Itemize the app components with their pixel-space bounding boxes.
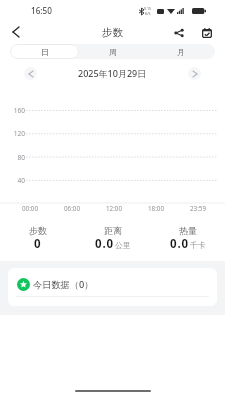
staticText: 步数 xyxy=(102,26,123,39)
staticText: 0 xyxy=(34,236,42,252)
staticText: 0.0 xyxy=(95,236,114,252)
staticText: 热量 xyxy=(179,225,197,236)
button[interactable]: Calendar xyxy=(198,24,215,41)
button[interactable]: Next day xyxy=(188,67,201,80)
staticText: 16:50 xyxy=(31,5,52,16)
button[interactable]: 月 xyxy=(147,44,215,59)
staticText: 2025年10月29日 xyxy=(78,67,147,79)
staticText: 今日数据（0） xyxy=(33,278,94,291)
button[interactable]: Previous day xyxy=(24,67,37,80)
staticText: 80 xyxy=(0,153,25,162)
staticText: 0.15 xyxy=(144,6,152,11)
staticText: 公里 xyxy=(115,240,131,250)
staticText: 日 xyxy=(41,47,49,57)
staticText: K/S xyxy=(145,11,151,16)
staticText: 周 xyxy=(109,47,117,57)
button[interactable]: Back xyxy=(0,21,32,43)
staticText: 18:00 xyxy=(135,204,177,213)
staticText: 00:00 xyxy=(9,204,51,213)
staticText: 千卡 xyxy=(190,240,206,250)
staticText: 120 xyxy=(0,129,25,138)
staticText: 160 xyxy=(0,106,25,115)
button[interactable]: 今日数据（0） xyxy=(8,268,217,306)
staticText: 步数 xyxy=(29,225,47,236)
staticText: 12:00 xyxy=(93,204,135,213)
staticText: 0.0 xyxy=(170,236,189,252)
button[interactable]: 周 xyxy=(79,44,147,59)
button[interactable]: Share xyxy=(170,24,187,41)
staticText: 距离 xyxy=(104,225,122,236)
staticText: 月 xyxy=(177,47,185,57)
staticText: 23:59 xyxy=(177,204,219,213)
staticText: 06:00 xyxy=(51,204,93,213)
staticText: 40 xyxy=(0,176,25,185)
button[interactable]: 日 xyxy=(10,44,79,59)
